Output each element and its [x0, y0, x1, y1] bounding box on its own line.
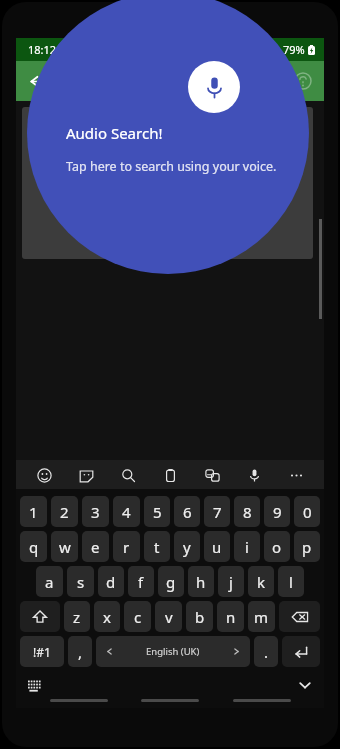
button[interactable]: h — [188, 566, 214, 597]
button[interactable]: q — [20, 531, 47, 562]
button[interactable]: 0 — [294, 496, 320, 527]
button[interactable]: 7 — [204, 496, 230, 527]
button[interactable]: a — [36, 566, 63, 597]
staticText: 79% — [283, 42, 305, 57]
button[interactable]: 9 — [264, 496, 290, 527]
button[interactable]: l — [278, 566, 304, 597]
button[interactable]: 2 — [51, 496, 78, 527]
button[interactable]: m — [248, 601, 275, 632]
button[interactable]: . — [254, 636, 278, 667]
staticText: 8 — [243, 502, 252, 522]
button[interactable]: c — [124, 601, 151, 632]
button[interactable]: !#1 — [20, 636, 64, 667]
staticText: d — [106, 572, 116, 592]
staticText: 3 — [91, 502, 100, 522]
button[interactable]: More — [282, 461, 310, 489]
button[interactable]: Stickers — [72, 461, 100, 489]
staticText: 9 — [273, 502, 282, 522]
button[interactable]: u — [204, 531, 230, 562]
button[interactable]: v — [155, 601, 182, 632]
staticText: w — [59, 537, 71, 557]
staticText: 6 — [183, 502, 192, 522]
staticText: h — [196, 572, 206, 592]
button[interactable]: w — [51, 531, 78, 562]
staticText: . — [264, 642, 269, 662]
button[interactable]: t — [144, 531, 170, 562]
staticText: t — [154, 537, 160, 557]
staticText: 18:12 — [28, 42, 57, 57]
button[interactable]: Audio Search tip — [16, 38, 324, 708]
staticText: v — [165, 607, 173, 627]
staticText: p — [302, 537, 312, 557]
button[interactable]: , — [68, 636, 92, 667]
button[interactable]: f — [128, 566, 154, 597]
button[interactable]: r — [113, 531, 140, 562]
button[interactable]: 6 — [174, 496, 200, 527]
staticText: 1 — [29, 502, 38, 522]
button[interactable]: n — [217, 601, 244, 632]
button[interactable]: Enter — [282, 636, 320, 667]
button[interactable]: i — [234, 531, 260, 562]
staticText: Tap here to search using your voice. — [66, 158, 277, 175]
button[interactable]: Audio search — [188, 61, 240, 113]
button[interactable]: Back — [19, 62, 57, 100]
staticText: 5 — [153, 502, 162, 522]
staticText: j — [229, 572, 233, 592]
button[interactable]: Space — [96, 636, 250, 667]
staticText: c — [134, 607, 142, 627]
staticText: 4 — [122, 502, 131, 522]
staticText: 0 — [303, 502, 312, 522]
button[interactable]: k — [248, 566, 274, 597]
staticText: k — [257, 572, 266, 592]
button[interactable]: Shift — [20, 601, 60, 632]
button[interactable]: x — [94, 601, 120, 632]
staticText: g — [166, 572, 176, 592]
staticText: 2 — [60, 502, 69, 522]
staticText: q — [29, 537, 39, 557]
staticText: o — [272, 537, 282, 557]
staticText: !#1 — [33, 644, 51, 660]
staticText: English (UK) — [146, 645, 200, 658]
button[interactable]: b — [186, 601, 213, 632]
button[interactable]: p — [294, 531, 320, 562]
button[interactable]: 1 — [20, 496, 47, 527]
staticText: b — [195, 607, 205, 627]
staticText: x — [103, 607, 111, 627]
button[interactable]: Hide keyboard — [294, 674, 316, 696]
button[interactable]: y — [174, 531, 200, 562]
button[interactable]: 3 — [82, 496, 109, 527]
button[interactable]: o — [264, 531, 290, 562]
button[interactable]: s — [67, 566, 94, 597]
button[interactable]: Keyboard settings — [24, 674, 46, 696]
button[interactable]: Search — [114, 461, 142, 489]
button[interactable]: g — [158, 566, 184, 597]
staticText: y — [183, 537, 191, 557]
staticText: f — [138, 572, 144, 592]
button[interactable]: z — [64, 601, 90, 632]
button[interactable]: Translate — [198, 461, 226, 489]
staticText: e — [91, 537, 100, 557]
button[interactable]: 5 — [144, 496, 170, 527]
button[interactable]: Emoji — [30, 461, 58, 489]
staticText: n — [226, 607, 236, 627]
button[interactable]: d — [98, 566, 124, 597]
button[interactable]: j — [218, 566, 244, 597]
staticText: l — [289, 572, 293, 592]
staticText: Audio Search! — [66, 123, 163, 143]
button[interactable]: e — [82, 531, 109, 562]
button[interactable]: 4 — [113, 496, 140, 527]
button[interactable]: Voice input — [240, 461, 268, 489]
staticText: r — [123, 537, 130, 557]
button[interactable]: 8 — [234, 496, 260, 527]
staticText: 7 — [213, 502, 222, 522]
button[interactable]: Help — [286, 64, 320, 98]
staticText: a — [45, 572, 54, 592]
staticText: m — [254, 607, 269, 627]
staticText: i — [245, 537, 249, 557]
button[interactable]: Backspace — [279, 601, 320, 632]
button[interactable]: Clipboard — [156, 461, 184, 489]
staticText: s — [77, 572, 85, 592]
